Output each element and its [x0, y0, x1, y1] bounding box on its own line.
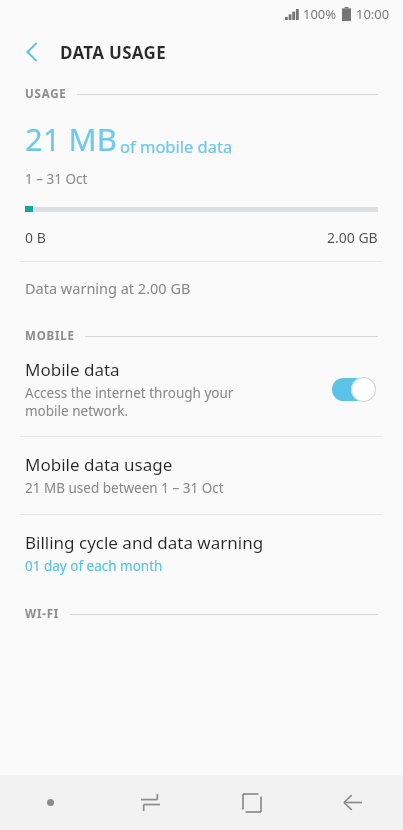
button[interactable]: Menu indicator: [0, 775, 100, 830]
button[interactable]: Home: [201, 775, 302, 830]
staticText: Data warning at 2.00 GB: [25, 278, 191, 298]
staticText: 2.00 GB: [327, 228, 378, 247]
staticText: DATA USAGE: [60, 41, 166, 64]
staticText: WI-FI: [25, 606, 60, 622]
staticText: USAGE: [25, 86, 67, 102]
staticText: of mobile data: [120, 135, 233, 157]
button[interactable]: Data warning at 2.00 GB: [0, 262, 403, 316]
button[interactable]: Back: [14, 34, 50, 70]
staticText: 21 MB: [25, 118, 117, 160]
button[interactable]: Billing cycle and data warning: [0, 515, 403, 592]
staticText: Billing cycle and data warning: [25, 531, 264, 554]
staticText: 10:00: [356, 5, 390, 23]
staticText: Access the internet through your mobile …: [25, 384, 234, 420]
staticText: MOBILE: [25, 328, 75, 344]
staticText: 01 day of each month: [25, 557, 163, 575]
button[interactable]: Back: [302, 775, 403, 830]
button[interactable]: Recents: [100, 775, 201, 830]
staticText: Mobile data: [25, 358, 120, 381]
staticText: 1 – 31 Oct: [25, 170, 88, 188]
staticText: 21 MB used between 1 – 31 Oct: [25, 479, 224, 497]
button[interactable]: Mobile data: [0, 344, 403, 436]
button[interactable]: Mobile data usage: [0, 437, 403, 514]
staticText: 100%: [303, 5, 337, 23]
button[interactable]: Mobile data toggle: [327, 372, 381, 406]
staticText: 0 B: [25, 228, 46, 247]
staticText: Mobile data usage: [25, 453, 173, 476]
